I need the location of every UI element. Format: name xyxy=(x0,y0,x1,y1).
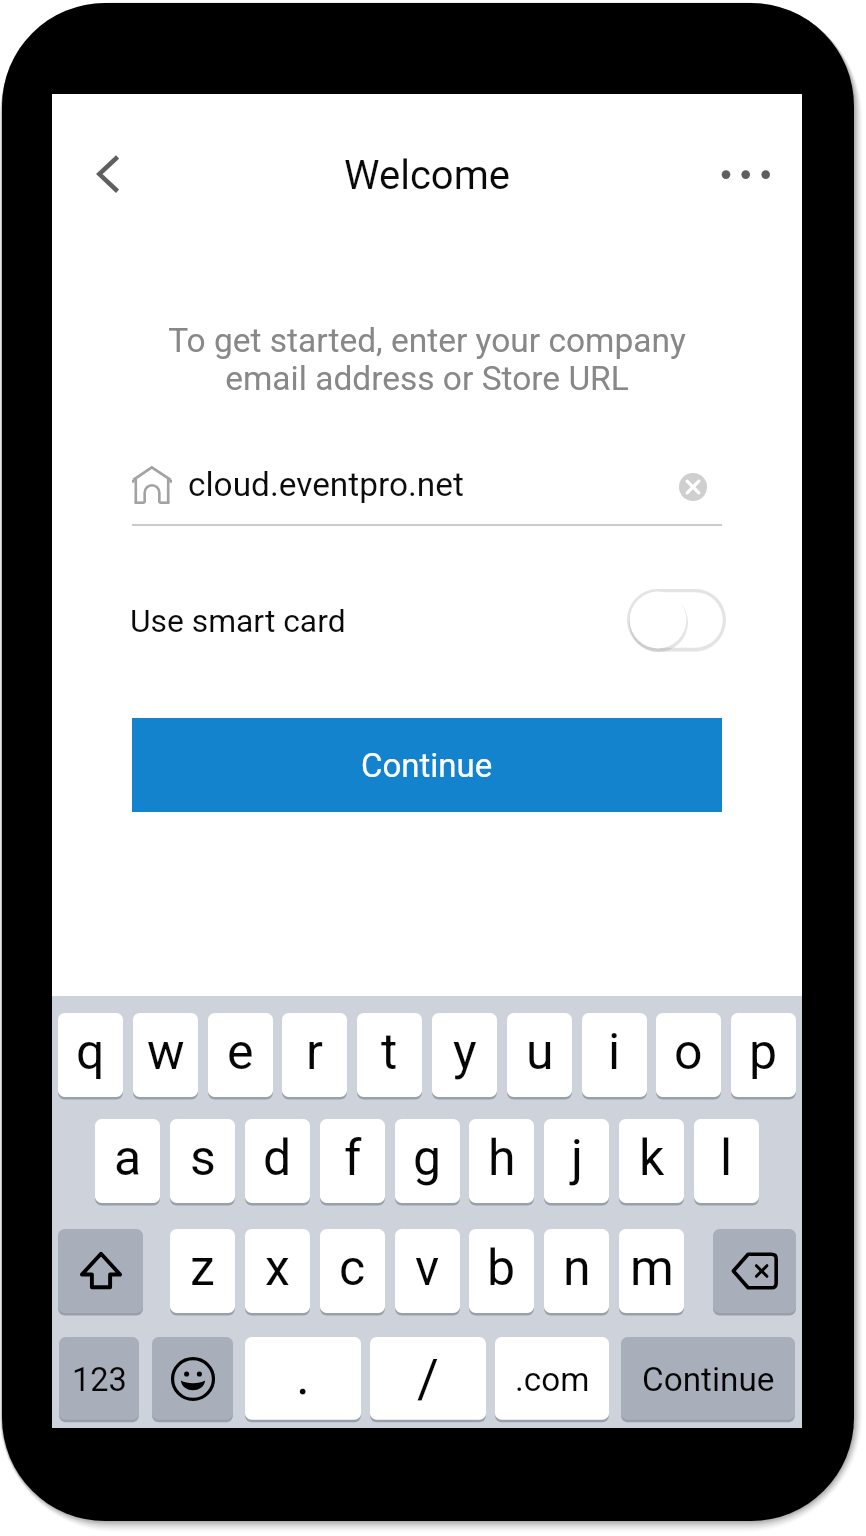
button[interactable]: n xyxy=(544,1229,609,1316)
staticText: / xyxy=(417,1348,439,1410)
button[interactable]: v xyxy=(395,1229,460,1316)
button[interactable]: g xyxy=(395,1119,460,1206)
staticText: Welcome xyxy=(52,152,802,199)
button[interactable]: x xyxy=(245,1229,310,1316)
button[interactable]: Backspace xyxy=(713,1229,796,1316)
button[interactable]: q xyxy=(58,1013,123,1100)
staticText: w xyxy=(147,1023,185,1082)
staticText: c xyxy=(339,1239,366,1298)
staticText: a xyxy=(114,1129,142,1188)
button[interactable]: .com xyxy=(495,1337,609,1423)
staticText: Use smart card xyxy=(130,602,346,639)
button[interactable]: More options xyxy=(696,142,796,208)
staticText: e xyxy=(227,1023,254,1082)
button[interactable]: z xyxy=(170,1229,235,1316)
staticText: j xyxy=(571,1129,583,1188)
button[interactable]: u xyxy=(507,1013,572,1100)
button[interactable]: Use smart card xyxy=(130,584,726,656)
staticText: z xyxy=(190,1239,215,1298)
staticText: t xyxy=(381,1023,398,1082)
button[interactable]: Continue xyxy=(132,718,722,812)
button[interactable]: w xyxy=(133,1013,198,1100)
staticText: d xyxy=(263,1129,292,1188)
staticText: Continue xyxy=(361,746,493,785)
button[interactable]: m xyxy=(619,1229,684,1316)
button[interactable]: s xyxy=(170,1119,235,1206)
button[interactable]: k xyxy=(619,1119,684,1206)
button[interactable]: i xyxy=(582,1013,647,1100)
staticText: p xyxy=(749,1023,778,1082)
button[interactable]: Shift xyxy=(58,1229,143,1316)
button[interactable]: c xyxy=(320,1229,385,1316)
button[interactable]: h xyxy=(469,1119,534,1206)
button[interactable]: d xyxy=(245,1119,310,1206)
button[interactable]: p xyxy=(731,1013,796,1100)
staticText: q xyxy=(76,1023,105,1082)
staticText: Continue xyxy=(642,1360,775,1399)
button[interactable]: . xyxy=(245,1337,361,1423)
staticText: k xyxy=(639,1129,665,1188)
staticText: To get started, enter your company email… xyxy=(87,321,767,398)
button[interactable]: b xyxy=(469,1229,534,1316)
button[interactable]: o xyxy=(656,1013,721,1100)
button[interactable]: / xyxy=(370,1337,486,1423)
staticText: s xyxy=(190,1129,216,1188)
button[interactable]: r xyxy=(282,1013,347,1100)
staticText: 123 xyxy=(72,1361,127,1399)
staticText: l xyxy=(720,1129,733,1188)
button[interactable]: Clear text xyxy=(671,465,715,509)
staticText: cloud.eventpro.net xyxy=(188,465,464,504)
staticText: . xyxy=(296,1345,310,1407)
staticText: m xyxy=(630,1239,674,1298)
staticText: v xyxy=(415,1239,440,1298)
staticText: n xyxy=(563,1239,591,1298)
button[interactable]: f xyxy=(320,1119,385,1206)
staticText: g xyxy=(413,1129,442,1188)
staticText: h xyxy=(488,1129,516,1188)
button[interactable]: Use smart card toggle xyxy=(627,589,726,651)
staticText: x xyxy=(265,1239,290,1298)
staticText: y xyxy=(453,1023,477,1082)
staticText: .com xyxy=(515,1360,590,1399)
staticText: i xyxy=(608,1023,621,1082)
staticText: f xyxy=(344,1129,362,1188)
staticText: o xyxy=(674,1023,703,1082)
button[interactable]: t xyxy=(357,1013,422,1100)
button[interactable]: e xyxy=(208,1013,273,1100)
button[interactable]: a xyxy=(95,1119,160,1206)
button[interactable]: Back xyxy=(72,142,134,208)
staticText: r xyxy=(306,1023,323,1082)
button[interactable]: j xyxy=(544,1119,609,1206)
button[interactable]: y xyxy=(432,1013,497,1100)
staticText: u xyxy=(526,1023,554,1082)
button[interactable]: Emoji xyxy=(152,1337,233,1423)
button[interactable]: l xyxy=(694,1119,759,1206)
button[interactable]: 123 xyxy=(59,1337,139,1423)
button[interactable]: Continue xyxy=(621,1337,795,1423)
staticText: b xyxy=(487,1239,516,1298)
